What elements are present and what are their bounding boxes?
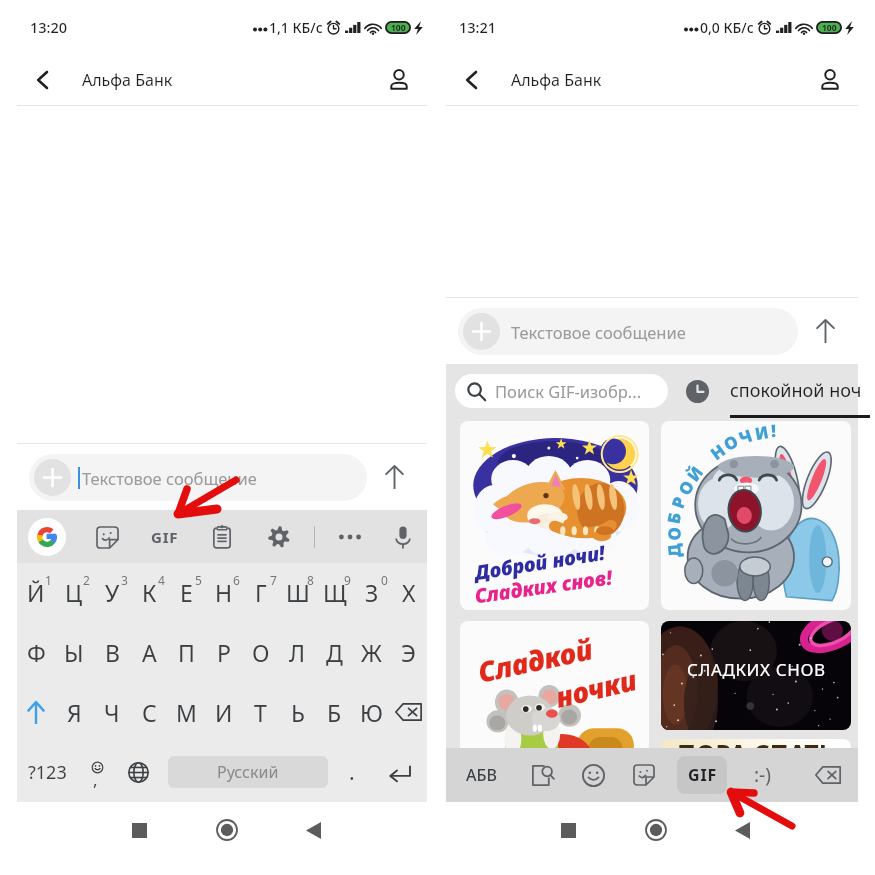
staticText: Ю [360,697,383,728]
staticText: Н [706,438,730,465]
button[interactable]: С [131,682,168,742]
button[interactable]: Back [291,808,335,852]
button[interactable]: А [131,622,168,682]
button[interactable]: Текстовое сообщение [458,308,798,355]
button[interactable]: спокойной ноч [730,364,870,421]
staticText: . [349,758,355,787]
button[interactable]: Enter [372,742,427,802]
staticText: 0,0 КБ/c [700,18,754,37]
staticText: П [178,637,195,668]
button[interactable]: Ч [93,682,131,742]
button[interactable]: Ю [353,682,390,742]
button[interactable]: М [168,682,205,742]
button[interactable]: Backspace [808,755,848,795]
button[interactable]: Recent GIFs [681,375,713,407]
button[interactable]: Ш [279,563,316,622]
button[interactable]: У [93,563,131,622]
button[interactable]: Д [316,622,353,682]
button[interactable]: Clipboard [204,519,240,555]
staticText: 13:20 [30,17,68,37]
staticText: О [719,429,743,456]
button[interactable]: Stickers [626,757,662,793]
button[interactable]: Е [168,563,205,622]
staticText: 8 [307,572,314,588]
button[interactable]: Backspace [390,682,427,742]
button[interactable]: Ц [55,563,93,622]
staticText: О [252,637,270,668]
staticText: спокойной ноч [730,378,862,403]
button[interactable]: Profile [804,54,856,105]
staticText: 6 [233,572,240,588]
button[interactable]: GIF [677,756,727,794]
button[interactable]: Й [17,563,55,622]
button[interactable]: Back [720,808,764,852]
button[interactable]: Н [205,563,242,622]
button[interactable]: Текстовое сообщение [29,454,367,501]
button[interactable]: Т [242,682,279,742]
button[interactable]: З [353,563,390,622]
button[interactable]: Profile [373,54,425,105]
staticText: А [142,637,157,668]
button[interactable]: Л [279,622,316,682]
button[interactable]: Home [205,808,249,852]
button[interactable]: Settings [261,519,297,555]
button[interactable]: Image search [524,757,560,793]
button[interactable]: Ь [279,682,316,742]
button[interactable]: Send [367,450,421,504]
button[interactable]: Э [390,622,427,682]
button[interactable]: И [205,682,242,742]
button[interactable]: АБВ [458,758,505,792]
button[interactable]: П [168,622,205,682]
button[interactable]: Доброй ночи! [460,421,649,610]
button[interactable]: Г [242,563,279,622]
button[interactable]: Поиск GIF-изобр... [455,374,668,408]
button[interactable]: Русский [168,756,328,788]
button[interactable]: Change language [118,742,158,802]
staticText: Е [180,577,193,608]
staticText: Сладкой [474,629,597,691]
button[interactable]: О [242,622,279,682]
button[interactable]: Recents [117,808,161,852]
staticText: ночки [552,660,640,716]
staticText: 1,1 КБ/c [269,18,323,37]
button[interactable]: Х [390,563,427,622]
button[interactable]: Back [446,54,498,105]
staticText: Ы [64,637,84,668]
button[interactable]: СЛАДКИХ СНОВ [661,621,851,730]
button[interactable]: Emoji [78,742,118,802]
button[interactable]: Ы [55,622,93,682]
button[interactable]: Я [55,682,93,742]
button[interactable]: Voice input [385,519,421,555]
button[interactable]: Сладкой [460,621,649,781]
button[interactable]: В [93,622,131,682]
button[interactable]: Shift [17,682,55,742]
staticText: Г [255,577,267,608]
staticText: 7 [270,572,277,588]
staticText: Р [666,493,691,512]
button[interactable]: . [332,742,372,802]
staticText: ! [771,421,776,442]
button[interactable]: ПОРА СПАТЬ [661,739,851,775]
button[interactable]: More options [332,519,368,555]
button[interactable]: Stickers [89,519,125,555]
button[interactable]: Send [798,304,852,358]
staticText: , [93,768,98,791]
button[interactable]: Б [316,682,353,742]
button[interactable]: Recents [546,808,590,852]
button[interactable]: Р [205,622,242,682]
button[interactable]: Emoji [575,757,611,793]
staticText: Р [217,637,231,668]
button[interactable]: GIF [147,519,183,555]
button[interactable]: Home [634,808,678,852]
button[interactable]: Щ [316,563,353,622]
button[interactable]: Ф [17,622,55,682]
button[interactable]: ?123 [17,742,78,802]
button[interactable]: Google [28,518,66,556]
staticText: Доброй ночи! [473,539,607,586]
button[interactable]: К [131,563,168,622]
button[interactable]: Д [661,421,851,610]
button[interactable]: :-) [742,755,782,795]
staticText: Альфа Банк [82,69,173,91]
button[interactable]: Ж [353,622,390,682]
button[interactable]: Back [17,54,69,105]
